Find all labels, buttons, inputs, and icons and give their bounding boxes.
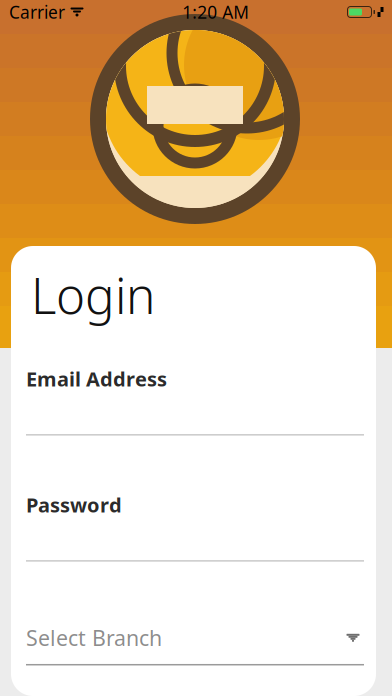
button[interactable]: Select Branch (11, 624, 364, 665)
staticText: Password (26, 492, 122, 518)
staticText: Carrier (9, 0, 65, 23)
staticText: 1:20 AM (182, 0, 249, 23)
staticText: Select Branch (26, 624, 162, 652)
staticText: Login (31, 262, 155, 327)
staticText: Email Address (26, 365, 167, 392)
